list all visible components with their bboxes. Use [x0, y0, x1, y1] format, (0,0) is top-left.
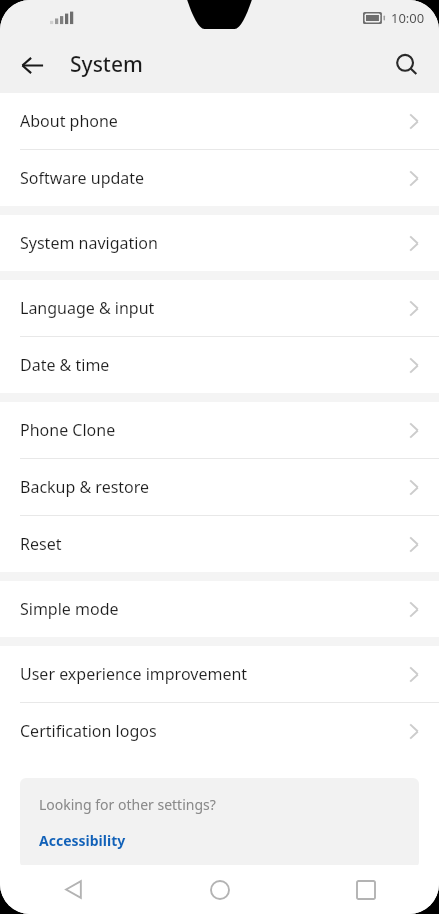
staticText: System	[70, 50, 143, 79]
button[interactable]: Phone Clone	[0, 402, 439, 458]
button[interactable]: Simple mode	[0, 581, 439, 637]
button[interactable]: Backup & restore	[0, 459, 439, 515]
button[interactable]: User experience improvement	[0, 646, 439, 702]
staticText: Accessibility	[39, 831, 126, 850]
staticText: Language & input	[20, 297, 155, 319]
button[interactable]: About phone	[0, 93, 439, 149]
button[interactable]: System navigation	[0, 215, 439, 271]
button[interactable]: Language & input	[0, 280, 439, 336]
staticText: Simple mode	[20, 598, 119, 620]
staticText: Phone Clone	[20, 419, 116, 441]
staticText: System navigation	[20, 232, 158, 254]
staticText: About phone	[20, 110, 118, 132]
button[interactable]: Reset	[0, 516, 439, 572]
button[interactable]: Certification logos	[0, 703, 439, 759]
button[interactable]: Back	[0, 865, 147, 914]
button[interactable]: Back	[8, 41, 56, 89]
button[interactable]: Search	[383, 41, 431, 89]
button[interactable]: Home	[147, 865, 293, 914]
button[interactable]: Looking for other settings?	[20, 778, 419, 868]
staticText: Software update	[20, 167, 145, 189]
staticText: Looking for other settings?	[39, 795, 216, 814]
staticText: Reset	[20, 533, 62, 555]
button[interactable]: Date & time	[0, 337, 439, 393]
staticText: User experience improvement	[20, 663, 248, 685]
staticText: Backup & restore	[20, 476, 150, 498]
button[interactable]: Recent apps	[293, 865, 439, 914]
staticText: Certification logos	[20, 720, 157, 742]
staticText: Date & time	[20, 354, 110, 376]
button[interactable]: Software update	[0, 150, 439, 206]
staticText: 10:00	[391, 9, 425, 27]
